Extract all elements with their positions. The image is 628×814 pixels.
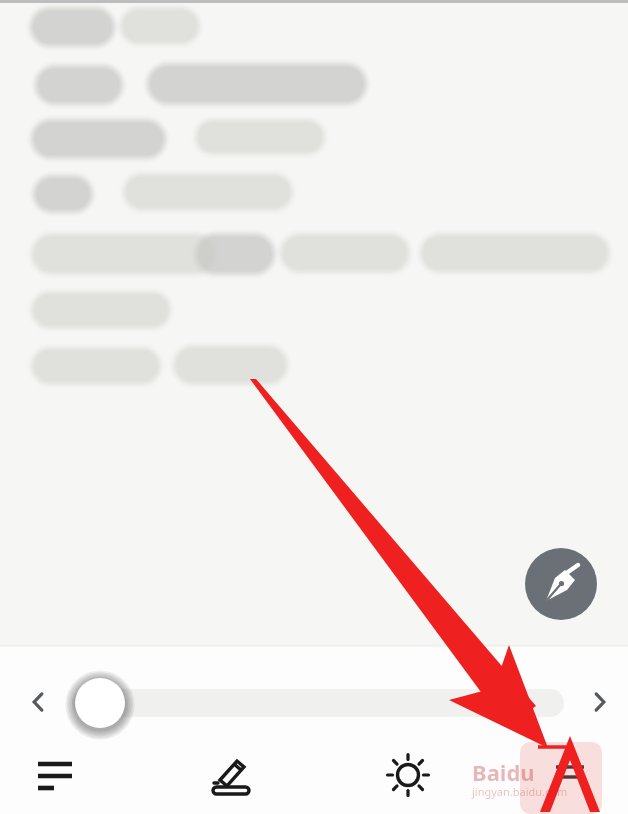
button[interactable]: Brightness bbox=[372, 739, 444, 811]
button[interactable]: Next page bbox=[578, 680, 622, 724]
button[interactable]: Previous page bbox=[16, 680, 60, 724]
staticText: jingyan.baidu.com bbox=[472, 784, 568, 799]
button[interactable]: More settings bbox=[534, 739, 606, 811]
button[interactable]: Annotate bbox=[194, 739, 266, 811]
button[interactable]: Page position bbox=[72, 687, 564, 719]
button[interactable]: New note bbox=[525, 548, 597, 620]
staticText: Baidu bbox=[472, 757, 535, 787]
button[interactable]: Outline bbox=[19, 739, 91, 811]
